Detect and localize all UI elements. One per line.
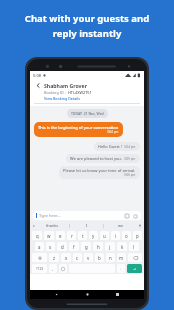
staticText: Booking ID : <box>44 90 66 95</box>
staticText: Please let us know your time of arrival. <box>63 168 136 173</box>
button[interactable]: Back <box>34 81 42 89</box>
staticText: TODAY 21 Nov, Wed <box>71 111 104 116</box>
button[interactable]: Emoji <box>59 264 67 273</box>
button[interactable]: g <box>81 242 91 251</box>
button[interactable]: b <box>95 253 104 262</box>
staticText: 5:08 <box>33 73 41 78</box>
button[interactable]: I <box>70 223 103 228</box>
staticText: t <box>82 233 84 239</box>
staticText: I <box>86 223 88 228</box>
staticText: p <box>136 233 139 239</box>
staticText: , <box>52 266 54 272</box>
button[interactable]: m <box>117 253 126 262</box>
button[interactable]: j <box>105 242 115 251</box>
button[interactable]: Attach <box>124 213 130 219</box>
button[interactable]: Recents <box>114 291 121 298</box>
staticText: v <box>87 255 90 261</box>
staticText: x <box>65 255 68 261</box>
button[interactable]: i <box>111 231 120 240</box>
button[interactable]: a <box>35 242 44 251</box>
button[interactable]: x <box>61 253 71 262</box>
staticText: c <box>76 255 79 261</box>
button[interactable]: Backspace <box>128 253 142 262</box>
staticText: o <box>125 233 128 239</box>
button[interactable]: h <box>93 242 103 251</box>
button[interactable]: t <box>78 231 87 240</box>
staticText: ?123 <box>36 266 44 271</box>
staticText: b <box>98 255 101 261</box>
staticText: Hello Guest ! <box>98 144 122 149</box>
button[interactable]: . <box>117 264 125 273</box>
button[interactable]: ?123 <box>32 264 47 273</box>
staticText: View Booking Details <box>44 96 80 101</box>
staticText: i <box>115 233 117 239</box>
staticText: Shabham Grover <box>44 82 87 89</box>
button[interactable]: Voice input <box>137 223 142 228</box>
staticText: Type here... <box>39 213 61 218</box>
staticText: y <box>92 233 95 239</box>
staticText: 3:04 pm <box>124 145 136 149</box>
button[interactable]: Home <box>84 291 91 298</box>
button[interactable]: e <box>56 231 65 240</box>
button[interactable]: we <box>104 223 137 228</box>
button[interactable]: o <box>122 231 131 240</box>
button[interactable]: p <box>133 231 142 240</box>
staticText: we <box>118 223 124 228</box>
button[interactable]: w <box>44 231 54 240</box>
button[interactable]: f <box>69 242 79 251</box>
staticText: thanks <box>46 223 59 228</box>
staticText: g <box>85 244 88 250</box>
button[interactable]: s <box>46 242 55 251</box>
button[interactable]: y <box>89 231 98 240</box>
staticText: q <box>36 233 39 239</box>
staticText: This is the beginning of your conversati… <box>38 125 119 130</box>
button[interactable]: thanks <box>36 223 69 228</box>
staticText: k <box>121 244 124 250</box>
button[interactable]: Send <box>132 213 138 219</box>
staticText: e <box>59 233 62 239</box>
button[interactable]: d <box>57 242 67 251</box>
staticText: HTL4XW2T51 <box>68 90 92 95</box>
button[interactable]: r <box>67 231 76 240</box>
staticText: r <box>71 233 73 239</box>
staticText: m <box>119 255 124 261</box>
staticText: n <box>109 255 112 261</box>
staticText: a <box>38 244 41 250</box>
button[interactable]: Type here... <box>33 211 141 220</box>
staticText: j <box>109 244 111 250</box>
button[interactable]: Enter <box>127 264 142 273</box>
staticText: 3:04 pm <box>107 130 119 134</box>
button[interactable]: n <box>106 253 115 262</box>
staticText: l <box>133 244 135 250</box>
staticText: We are pleased to host you. <box>70 156 122 161</box>
staticText: 3:05 pm <box>124 157 136 161</box>
staticText: reply instantly <box>14 27 160 40</box>
button[interactable]: z <box>49 253 59 262</box>
button[interactable]: Shift <box>32 253 47 262</box>
button[interactable]: k <box>117 242 127 251</box>
button[interactable]: v <box>84 253 93 262</box>
staticText: f <box>73 244 75 250</box>
staticText: 3:06 pm <box>124 173 136 177</box>
staticText: z <box>53 255 56 261</box>
button[interactable]: , <box>49 264 57 273</box>
button[interactable]: View Booking Details <box>44 96 80 101</box>
staticText: . <box>120 266 122 272</box>
button[interactable]: l <box>129 242 139 251</box>
button[interactable]: Back <box>53 291 60 298</box>
staticText: w <box>47 233 51 239</box>
staticText: h <box>97 244 100 250</box>
staticText: Chat with your guests and <box>14 12 160 25</box>
button[interactable]: q <box>32 231 42 240</box>
button[interactable]: u <box>100 231 109 240</box>
staticText: d <box>61 244 64 250</box>
staticText: s <box>49 244 52 250</box>
staticText: u <box>103 233 106 239</box>
button[interactable]: c <box>73 253 82 262</box>
